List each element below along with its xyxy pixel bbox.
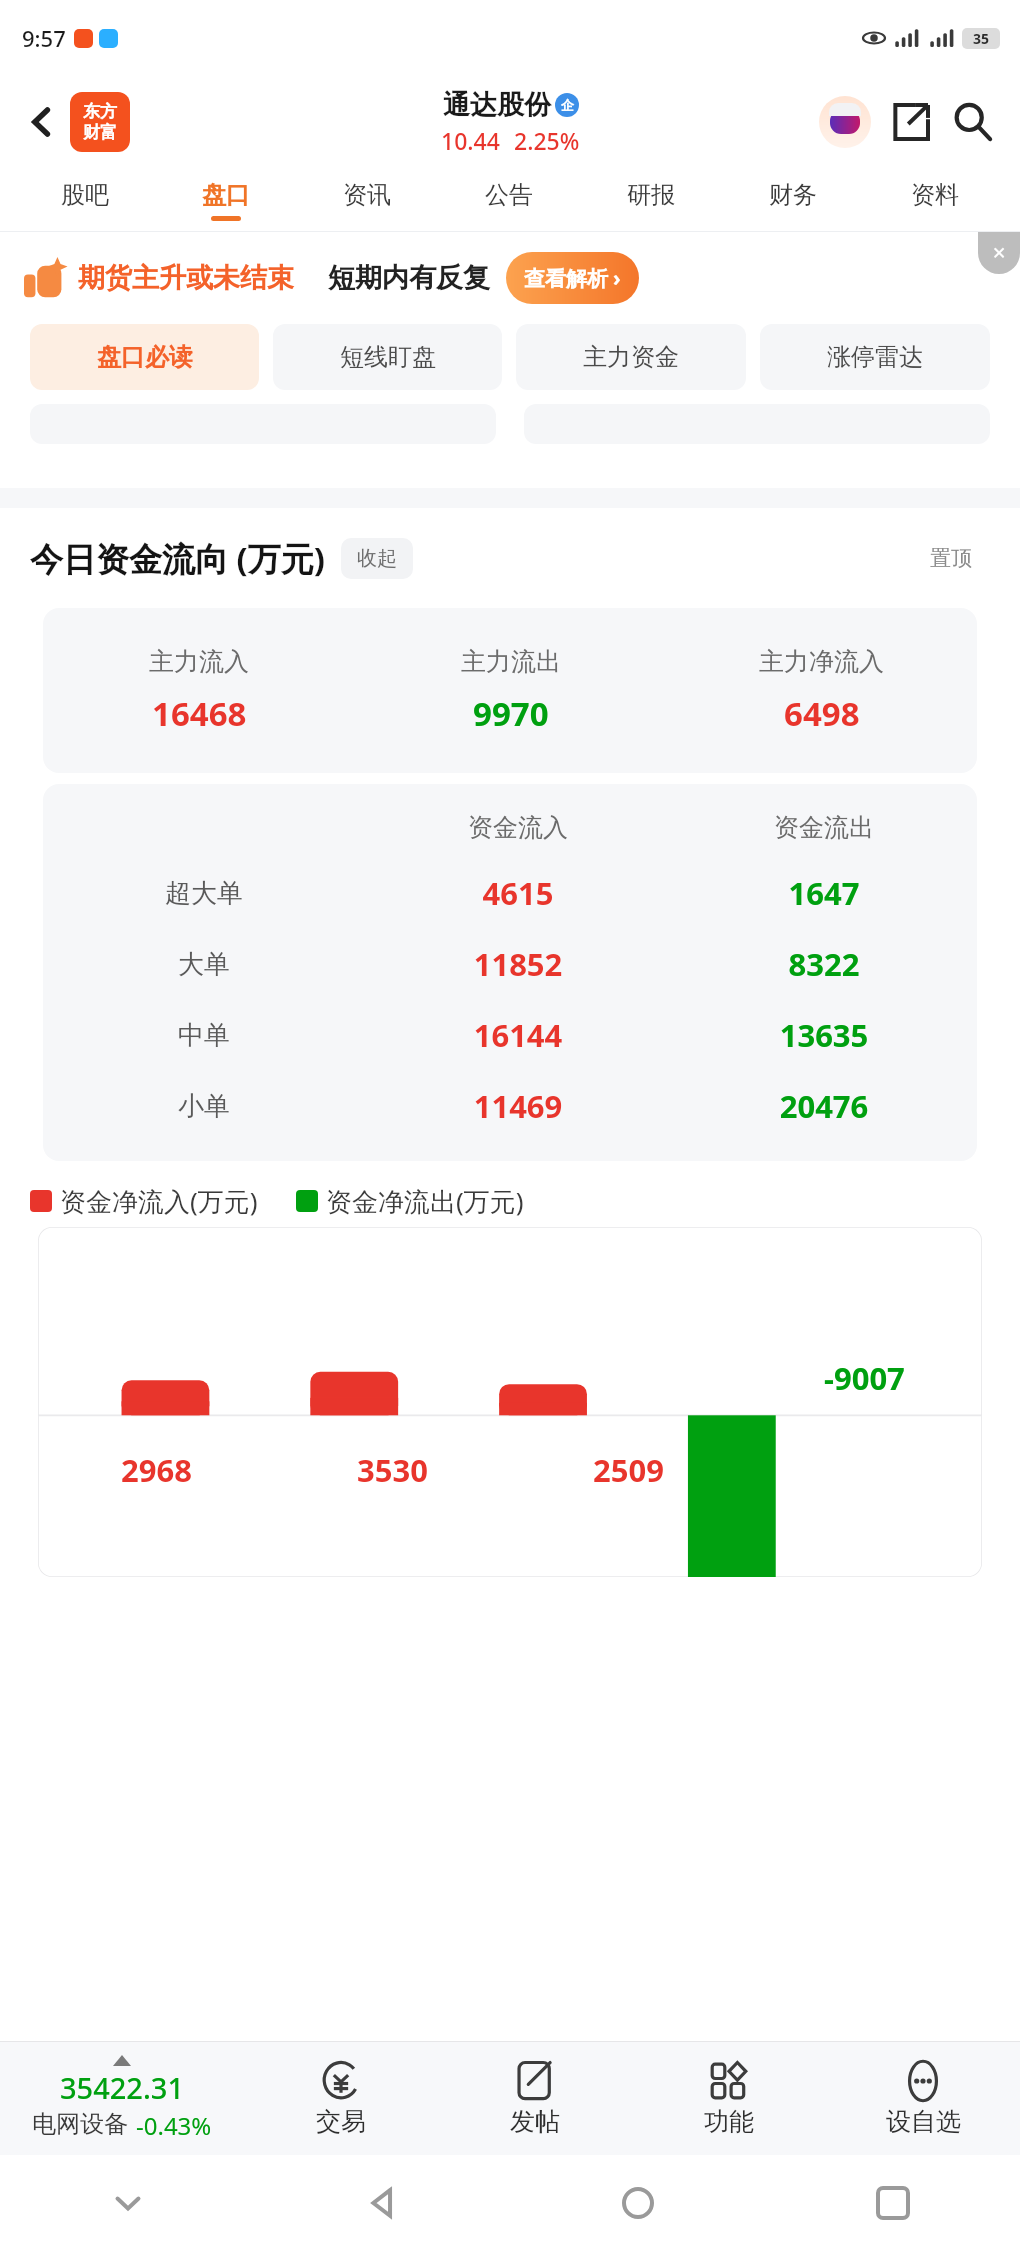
staticText: 2968 (121, 1449, 192, 1491)
button[interactable]: 资金流入 (43, 784, 977, 1161)
staticText: 功能 (704, 2106, 754, 2137)
staticText: 9:57 (22, 23, 66, 53)
staticText: 16144 (365, 1014, 671, 1056)
staticText: 10.44 (441, 125, 500, 156)
staticText: 置顶 (930, 545, 972, 571)
button[interactable]: Back (14, 94, 70, 150)
button[interactable]: AI assistant (814, 91, 876, 153)
button[interactable]: Home (510, 2155, 765, 2250)
button[interactable]: 短线盯盘 (273, 324, 502, 390)
staticText: 资金流入 (365, 812, 671, 843)
staticText: 财务 (769, 180, 817, 210)
staticText: 发帖 (510, 2106, 560, 2137)
staticText: 资金净流入(万元) (60, 1183, 258, 1219)
staticText: 期货主升或未结束 (78, 261, 294, 295)
button[interactable]: Back (255, 2155, 510, 2250)
staticText: 6498 (784, 691, 860, 736)
staticText: 小单 (178, 1090, 230, 1123)
staticText: 2509 (593, 1449, 664, 1491)
staticText: 35422.31 (60, 2068, 185, 2107)
button[interactable]: 主力流入 (43, 608, 977, 773)
staticText: 1647 (671, 872, 977, 914)
staticText: 资金流出 (671, 812, 977, 843)
staticText: 超大单 (165, 877, 243, 910)
staticText: 11852 (365, 943, 671, 985)
staticText: 查看解析 (524, 266, 608, 292)
staticText: 盘口必读 (97, 342, 193, 372)
staticText: 短期内有反复 (328, 261, 490, 295)
staticText: 8322 (671, 943, 977, 985)
staticText: 短线盯盘 (340, 342, 436, 372)
staticText: 主力流入 (149, 646, 249, 677)
button[interactable]: 2968 (38, 1227, 982, 1577)
button[interactable]: Hide (0, 2155, 255, 2250)
button[interactable]: 功能 (632, 2042, 826, 2155)
staticText: 主力资金 (583, 342, 679, 372)
staticText: 涨停雷达 (827, 342, 923, 372)
staticText: 3530 (357, 1449, 428, 1491)
staticText: 企 (561, 97, 574, 113)
staticText: 东方 (83, 101, 117, 122)
staticText: 通达股份 (443, 88, 551, 122)
button[interactable]: 交易 (244, 2042, 438, 2155)
button[interactable]: Recents (765, 2155, 1020, 2250)
button[interactable]: 收起 (341, 538, 413, 579)
staticText: 中单 (178, 1019, 230, 1052)
staticText: -0.43% (136, 2109, 212, 2142)
staticText: 13635 (671, 1014, 977, 1056)
button[interactable]: 查看解析 (506, 252, 639, 304)
staticText: 11469 (365, 1085, 671, 1127)
button[interactable]: Search (942, 91, 1004, 153)
button[interactable]: 研报 (580, 168, 722, 232)
button[interactable]: Share (882, 93, 940, 151)
staticText: 交易 (316, 2106, 366, 2137)
staticText: 今日资金流向 (万元) (30, 536, 325, 581)
button[interactable]: 公告 (438, 168, 580, 232)
staticText: › (613, 264, 621, 293)
button[interactable]: 35422.31 (0, 2042, 244, 2155)
staticText: 9970 (473, 691, 549, 736)
button[interactable]: 股吧 (14, 168, 155, 232)
button[interactable]: 财务 (722, 168, 864, 232)
button[interactable]: 资料 (864, 168, 1006, 232)
staticText: 收起 (357, 546, 397, 571)
button[interactable]: East Money (70, 92, 130, 152)
staticText: 资金净流出(万元) (326, 1183, 524, 1219)
staticText: 大单 (178, 948, 230, 981)
staticText: 公告 (485, 180, 533, 210)
staticText: 股吧 (61, 180, 109, 210)
staticText: 电网设备 (32, 2109, 128, 2139)
button[interactable]: 涨停雷达 (760, 324, 990, 390)
staticText: 资料 (911, 180, 959, 210)
staticText: 设自选 (886, 2106, 961, 2137)
button[interactable]: 置顶 (912, 536, 990, 580)
button[interactable]: 资讯 (296, 168, 438, 232)
staticText: 主力净流入 (759, 646, 884, 677)
staticText: 研报 (627, 180, 675, 210)
staticText: 资讯 (343, 180, 391, 210)
button[interactable]: 盘口必读 (30, 324, 259, 390)
staticText: 财富 (83, 122, 117, 143)
button[interactable]: 发帖 (438, 2042, 632, 2155)
staticText: 主力流出 (461, 646, 561, 677)
staticText: ✕ (992, 243, 1007, 263)
button[interactable]: Close (978, 232, 1020, 274)
staticText: 35 (973, 29, 990, 48)
staticText: -9007 (824, 1357, 905, 1399)
staticText: 20476 (671, 1085, 977, 1127)
button[interactable]: 主力资金 (516, 324, 746, 390)
staticText: 盘口 (202, 180, 250, 210)
staticText: 2.25% (514, 125, 580, 156)
staticText: 4615 (365, 872, 671, 914)
button[interactable]: 盘口 (155, 168, 296, 232)
button[interactable]: 设自选 (826, 2042, 1020, 2155)
staticText: 16468 (152, 691, 247, 736)
